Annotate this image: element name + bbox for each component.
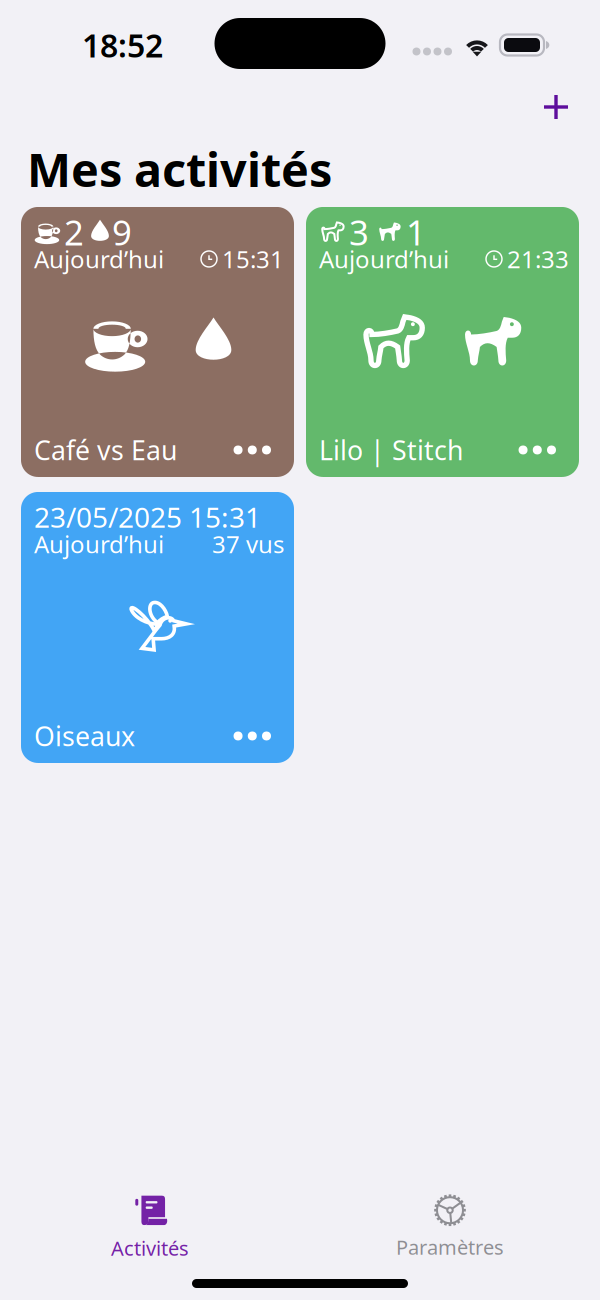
staticText: 15:31 bbox=[222, 243, 284, 275]
button[interactable]: Activités bbox=[0, 1191, 300, 1263]
staticText: 3 bbox=[349, 209, 369, 255]
staticText: 9 bbox=[112, 209, 132, 255]
staticText: 23/05/2025 15:31 bbox=[34, 498, 261, 536]
staticText: Oiseaux bbox=[34, 718, 135, 754]
staticText: 37 vus bbox=[212, 528, 284, 560]
button[interactable]: 2 bbox=[21, 207, 294, 477]
button[interactable]: 23/05/2025 15:31 bbox=[21, 492, 294, 763]
staticText: Lilo | Stitch bbox=[319, 432, 463, 468]
staticText: Activités bbox=[111, 1235, 189, 1261]
staticText: Mes activités bbox=[27, 138, 332, 200]
staticText: 2 bbox=[64, 209, 84, 255]
staticText: Paramètres bbox=[396, 1234, 504, 1260]
staticText: Aujourd’hui bbox=[319, 243, 449, 275]
staticText: Aujourd’hui bbox=[34, 243, 164, 275]
staticText: 18:52 bbox=[82, 24, 163, 66]
staticText: Aujourd’hui bbox=[34, 528, 164, 560]
staticText: Café vs Eau bbox=[34, 432, 177, 468]
button[interactable]: Ajouter bbox=[530, 81, 582, 133]
staticText: 21:33 bbox=[507, 243, 569, 275]
button[interactable]: 3 bbox=[306, 207, 579, 477]
button[interactable]: Paramètres bbox=[300, 1191, 600, 1263]
staticText: 1 bbox=[406, 209, 426, 255]
